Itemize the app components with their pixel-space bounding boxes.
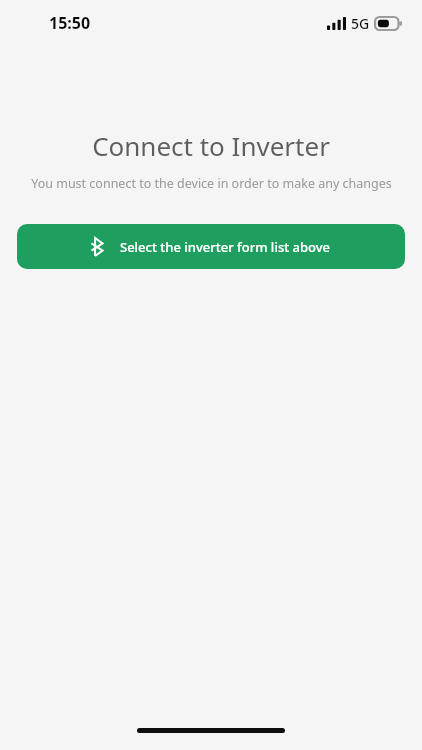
staticText: Select the inverter form list above bbox=[120, 238, 331, 256]
staticText: You must connect to the device in order … bbox=[31, 175, 392, 192]
staticText: Connect to Inverter bbox=[92, 128, 330, 163]
button[interactable]: Select the inverter form list above bbox=[17, 224, 405, 269]
staticText: 15:50 bbox=[49, 12, 91, 34]
staticText: 5G bbox=[351, 14, 370, 33]
